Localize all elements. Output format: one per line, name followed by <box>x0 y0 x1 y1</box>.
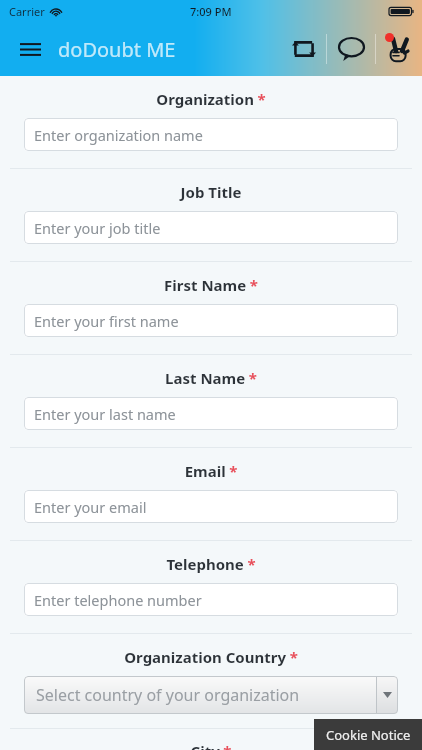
staticText: Enter your last name <box>34 404 176 424</box>
staticText: Enter your job title <box>34 218 161 238</box>
staticText: Enter telephone number <box>34 590 202 610</box>
staticText: Enter your email <box>34 497 147 517</box>
staticText: Telephone * <box>0 554 422 574</box>
staticText: Email * <box>0 461 422 481</box>
button[interactable]: Enter your last name <box>24 397 398 430</box>
button[interactable]: Cookie Notice <box>314 719 422 750</box>
staticText: Cookie Notice <box>326 726 411 744</box>
staticText: Last Name * <box>0 368 422 388</box>
button[interactable]: Enter your email <box>24 490 398 523</box>
staticText: Job Title <box>0 182 422 202</box>
staticText: City * <box>0 741 422 750</box>
staticText: Organization * <box>0 89 422 109</box>
staticText: Organization Country * <box>0 647 422 667</box>
button[interactable]: Enter your job title <box>24 211 398 244</box>
button[interactable]: Menu <box>10 29 50 69</box>
staticText: First Name * <box>0 275 422 295</box>
staticText: Carrier <box>9 4 45 19</box>
button[interactable]: Enter organization name <box>24 118 398 151</box>
button[interactable]: Select country of your organization <box>24 676 398 714</box>
staticText: 7:09 PM <box>190 4 232 19</box>
other: Open country list <box>377 676 398 714</box>
button[interactable]: Messages <box>327 22 375 76</box>
button[interactable]: Enter telephone number <box>24 583 398 616</box>
staticText: doDoubt ME <box>58 36 176 63</box>
staticText: Enter your first name <box>34 311 179 331</box>
staticText: Select country of your organization <box>36 684 300 706</box>
staticText: Enter organization name <box>34 125 203 145</box>
button[interactable]: Enter your first name <box>24 304 398 337</box>
button[interactable]: Repost <box>282 22 326 76</box>
button[interactable]: Profile <box>376 22 422 76</box>
